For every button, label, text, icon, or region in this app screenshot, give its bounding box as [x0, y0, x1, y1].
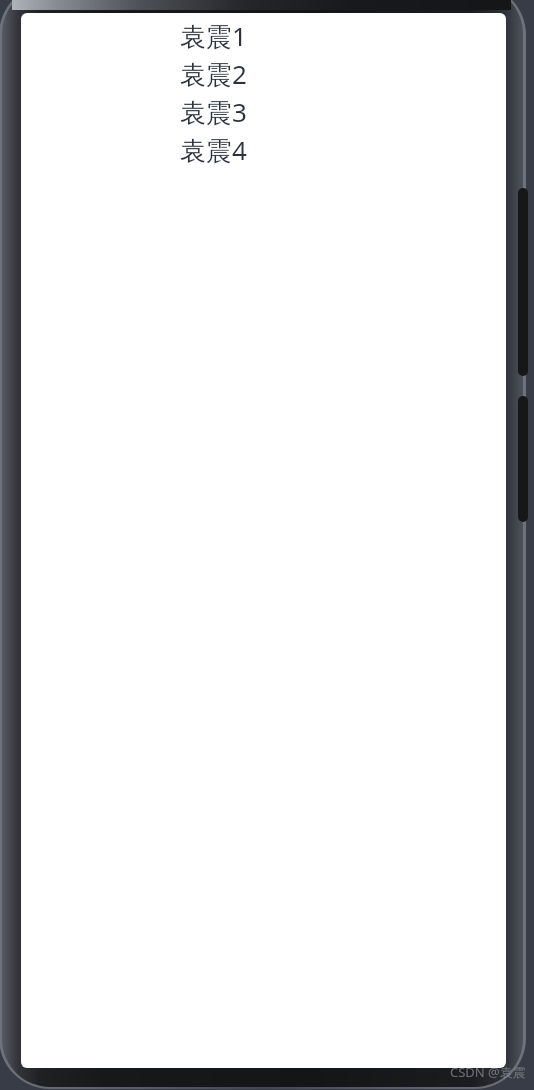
- staticText: 袁震1: [180, 18, 247, 54]
- other: Watermark: [450, 1063, 526, 1081]
- button[interactable]: 袁震1: [180, 14, 300, 52]
- staticText: 袁震2: [180, 56, 247, 92]
- staticText: CSDN @袁震: [450, 1063, 526, 1081]
- button[interactable]: 袁震2: [180, 52, 300, 90]
- staticText: 袁震3: [180, 94, 247, 130]
- button[interactable]: 袁震3: [180, 90, 300, 128]
- button[interactable]: 袁震4: [180, 128, 300, 166]
- staticText: 袁震4: [180, 132, 247, 168]
